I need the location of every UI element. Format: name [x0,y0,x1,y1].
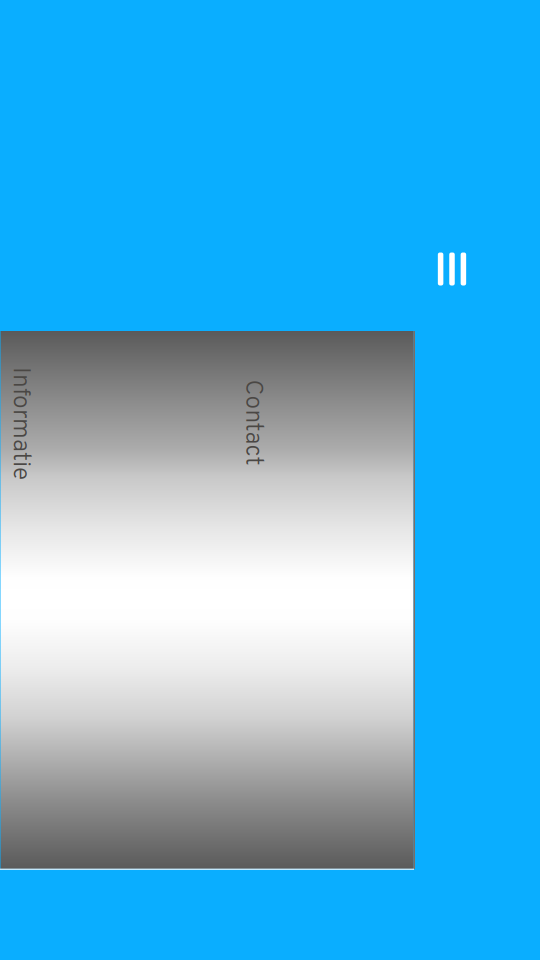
button[interactable]: Informatie [138,708,288,752]
button[interactable]: Contact [152,476,272,520]
staticText: Informatie [157,714,270,746]
staticText: Contact [169,482,255,513]
